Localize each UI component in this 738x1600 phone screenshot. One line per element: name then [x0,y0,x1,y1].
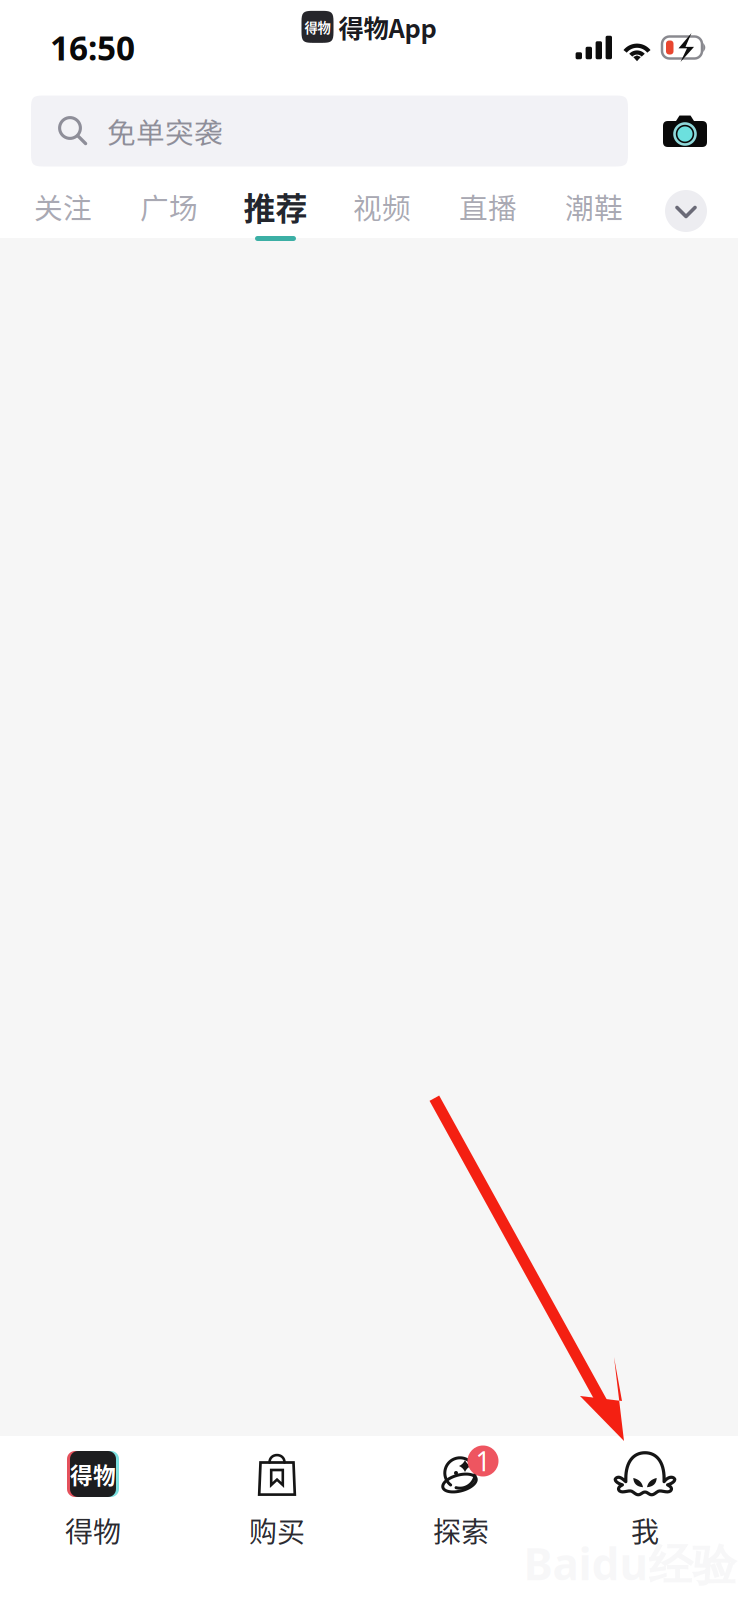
staticText: 得物 [70,1458,116,1490]
staticText: 广场 [140,186,198,227]
button[interactable]: 得物 [1,1436,185,1600]
staticText: 关注 [34,186,92,227]
button[interactable]: 关注 [10,177,116,245]
staticText: 购买 [249,1510,305,1550]
staticText: 16:50 [50,25,135,70]
staticText: 直播 [459,186,517,227]
button[interactable]: 潮鞋 [541,177,647,245]
staticText: 探索 [433,1510,489,1550]
button[interactable]: More categories [656,177,716,245]
staticText: 推荐 [243,183,307,230]
staticText: 视频 [353,186,411,227]
button[interactable]: 推荐 [222,177,329,245]
button[interactable]: 我 [553,1436,737,1600]
staticText: 潮鞋 [565,186,623,227]
button[interactable]: 购买 [185,1436,369,1600]
staticText: 免单突袭 [107,110,223,152]
staticText: 得物 [65,1510,121,1550]
button[interactable]: 视频 [329,177,435,245]
staticText: 得物App [338,8,436,45]
staticText: Baidu经验 [523,1534,736,1593]
button[interactable]: 广场 [116,177,222,245]
button[interactable]: Camera search [652,95,718,166]
button[interactable]: 1 [369,1436,553,1600]
staticText: 我 [631,1510,659,1550]
staticText: 1 [475,1443,490,1479]
button[interactable]: 直播 [435,177,541,245]
button[interactable]: 免单突袭 [31,95,628,166]
staticText: 得物 [304,17,330,36]
